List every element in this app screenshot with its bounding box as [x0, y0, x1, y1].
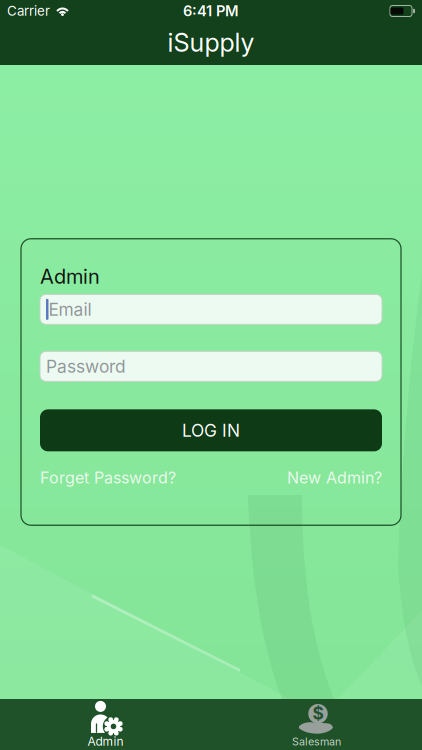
button[interactable]: LOG IN: [40, 409, 382, 451]
staticText: LOG IN: [182, 420, 240, 440]
staticText: $: [312, 703, 323, 723]
staticText: 6:41 PM: [183, 2, 239, 20]
staticText: Email: [48, 299, 91, 319]
button[interactable]: Email: [40, 294, 382, 324]
staticText: Salesman: [292, 735, 341, 748]
button[interactable]: $: [211, 699, 422, 750]
button[interactable]: Admin: [0, 699, 211, 750]
button[interactable]: Password: [40, 351, 382, 381]
staticText: Admin: [87, 734, 123, 749]
staticText: iSupply: [167, 28, 254, 57]
staticText: Password: [46, 356, 126, 376]
staticText: Forget Password?: [40, 468, 176, 487]
button[interactable]: New Admin?: [287, 468, 382, 487]
staticText: Carrier: [7, 3, 50, 19]
staticText: Admin: [40, 265, 100, 288]
staticText: New Admin?: [287, 468, 382, 487]
button[interactable]: Forget Password?: [40, 468, 176, 487]
